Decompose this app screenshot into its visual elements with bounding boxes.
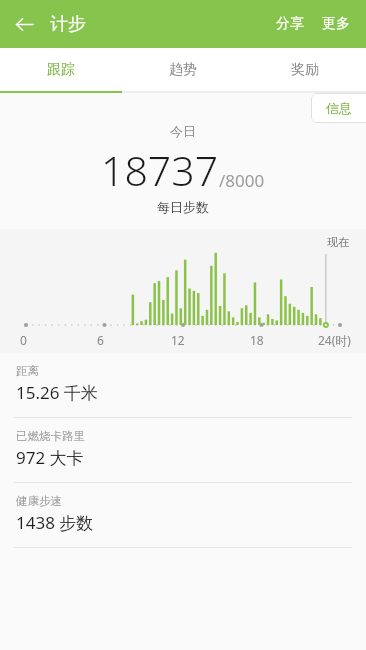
button[interactable]: 趋势 bbox=[122, 48, 244, 91]
staticText: 24(时) bbox=[318, 332, 351, 348]
button[interactable]: 跟踪 bbox=[0, 48, 122, 91]
staticText: 1438 步数 bbox=[16, 511, 94, 534]
staticText: 今日 bbox=[170, 123, 196, 139]
button[interactable]: 已燃烧卡路里 bbox=[0, 418, 366, 482]
staticText: 15.26 千米 bbox=[16, 381, 98, 404]
button[interactable]: 健康步速 bbox=[0, 483, 366, 547]
button[interactable]: 距离 bbox=[0, 353, 366, 417]
staticText: 计步 bbox=[50, 13, 86, 36]
button[interactable]: 更多 bbox=[315, 2, 366, 46]
staticText: 已燃烧卡路里 bbox=[16, 429, 85, 443]
staticText: 18 bbox=[250, 332, 264, 348]
staticText: 信息 bbox=[326, 100, 352, 116]
staticText: 趋势 bbox=[169, 61, 197, 79]
button[interactable]: 奖励 bbox=[244, 48, 366, 91]
staticText: 跟踪 bbox=[47, 61, 75, 79]
staticText: 972 大卡 bbox=[16, 446, 84, 469]
staticText: 12 bbox=[171, 332, 185, 348]
button[interactable]: 分享 bbox=[265, 2, 315, 46]
staticText: 分享 bbox=[276, 15, 304, 33]
staticText: 每日步数 bbox=[157, 199, 209, 215]
staticText: 健康步速 bbox=[16, 494, 62, 508]
button[interactable]: 信息 bbox=[311, 93, 366, 123]
button[interactable]: Back bbox=[0, 0, 48, 48]
staticText: 6 bbox=[97, 332, 104, 348]
staticText: /8000 bbox=[219, 169, 265, 192]
staticText: 距离 bbox=[16, 364, 39, 378]
staticText: 18737 bbox=[101, 142, 219, 198]
staticText: 奖励 bbox=[291, 61, 319, 79]
staticText: 更多 bbox=[322, 15, 350, 33]
staticText: 0 bbox=[20, 332, 27, 348]
staticText: 现在 bbox=[327, 235, 349, 249]
